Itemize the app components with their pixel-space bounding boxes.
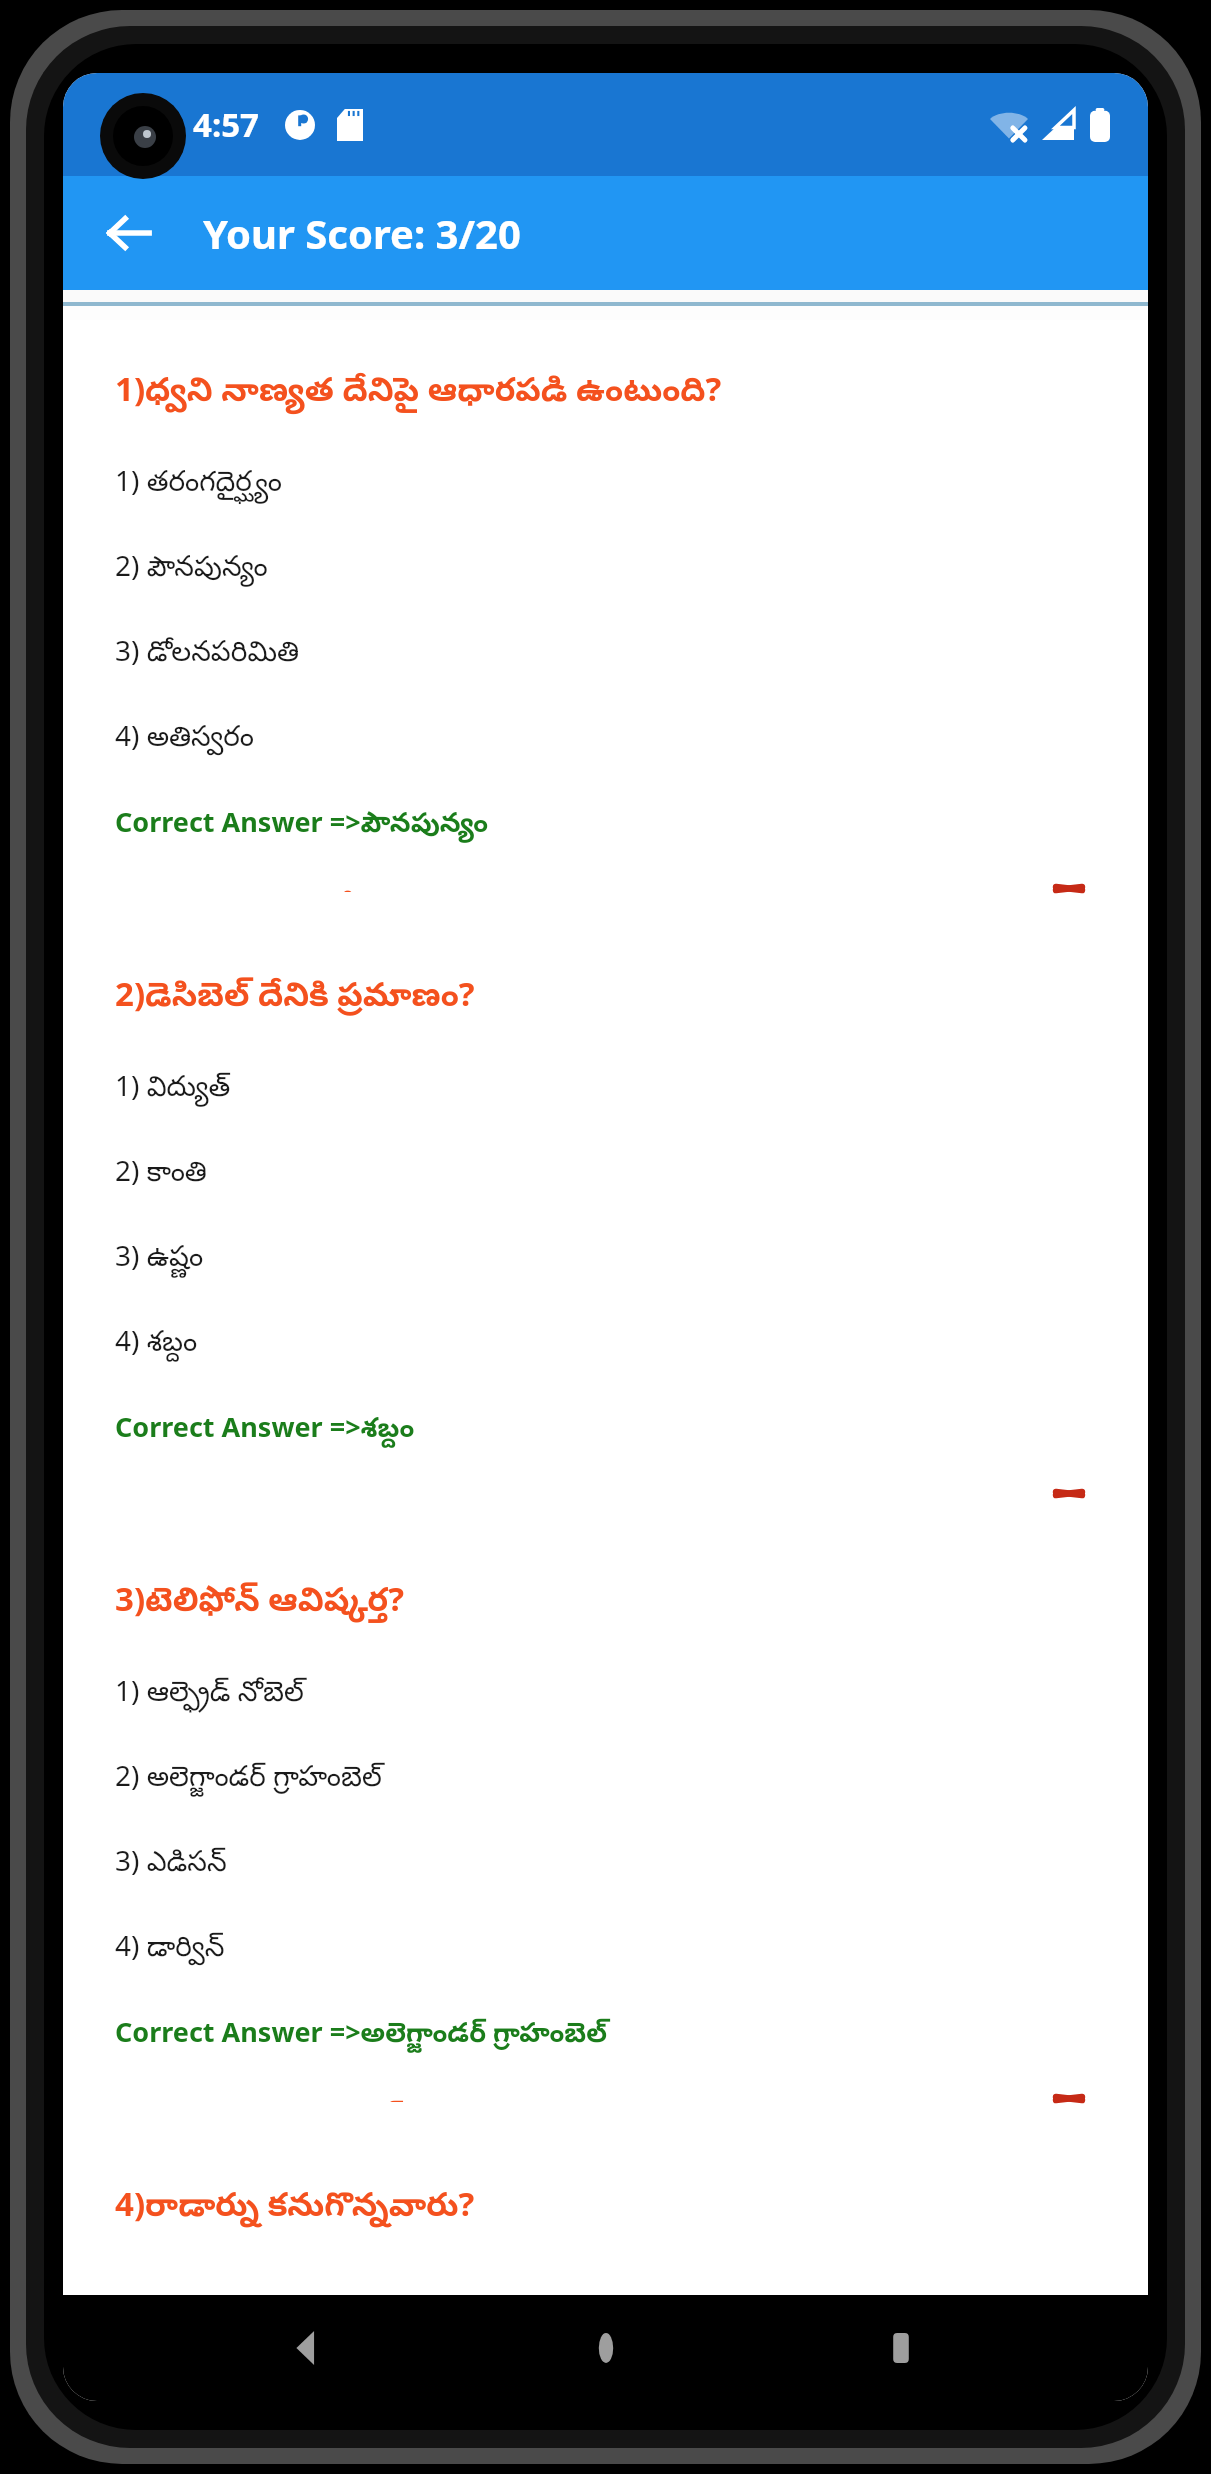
staticText: 3) ఉష్ణం	[115, 1236, 204, 1279]
staticText: Correct Answer =>పౌనపున్యం	[115, 803, 489, 845]
staticText: 4) అతిస్వరం	[115, 716, 254, 759]
staticText: Correct Answer =>శబ్దం	[115, 1408, 415, 1450]
button[interactable]: Incorrect answer	[1042, 885, 1096, 892]
staticText: 4)రాడార్ను కనుగొన్నవారు?	[115, 2181, 475, 2232]
button[interactable]: Back	[87, 191, 171, 275]
button[interactable]: 4)రాడార్ను కనుగొన్నవారు?	[84, 2135, 1127, 2295]
staticText: 4:57	[193, 102, 259, 147]
button[interactable]: Recent apps	[853, 2300, 949, 2396]
staticText: 2) పౌనపున్యం	[115, 546, 268, 589]
staticText: 2)డెసిబెల్ దేనికి ప్రమాణం?	[115, 971, 475, 1022]
staticText: 3) ఎడిసన్	[115, 1841, 227, 1884]
staticText: 2) అలెగ్జాండర్ గ్రాహంబెల్	[115, 1756, 382, 1799]
button[interactable]: Incorrect answer	[1042, 2095, 1096, 2102]
button[interactable]: Back	[262, 2300, 358, 2396]
staticText: 1) తరంగదైర్ఘ్యం	[115, 461, 283, 504]
staticText: Your Answer =>డోలనపరిమితి	[115, 885, 484, 892]
staticText: 2) కాంతి	[115, 1151, 207, 1194]
staticText: 1)ధ్వని నాణ్యత దేనిపై ఆధారపడి ఉంటుంది?	[115, 366, 722, 417]
button[interactable]: Incorrect answer	[1042, 1490, 1096, 1497]
staticText: 3)టెలిఫోన్ ఆవిష్కర్త?	[115, 1576, 404, 1627]
staticText: 1) ఆల్ఫ్రెడ్ నోబెల్	[115, 1671, 304, 1714]
staticText: 4) శబ్దం	[115, 1321, 198, 1364]
button[interactable]: 2)డెసిబెల్ దేనికి ప్రమాణం?	[84, 925, 1127, 1497]
staticText: 3) డోలనపరిమితి	[115, 631, 299, 674]
button[interactable]: 1)ధ్వని నాణ్యత దేనిపై ఆధారపడి ఉంటుంది?	[84, 320, 1127, 892]
staticText: Your Score: 3/20	[203, 206, 521, 260]
staticText: 4) డార్విన్	[115, 1926, 225, 1969]
button[interactable]: 3)టెలిఫోన్ ఆవిష్కర్త?	[84, 1530, 1127, 2102]
staticText: 1) విద్యుత్	[115, 1066, 231, 1109]
staticText: Your Answer =>డార్విన్	[115, 2095, 405, 2102]
staticText: Correct Answer =>అలెగ్జాండర్ గ్రాహంబెల్	[115, 2013, 607, 2055]
button[interactable]: Home	[558, 2300, 654, 2396]
